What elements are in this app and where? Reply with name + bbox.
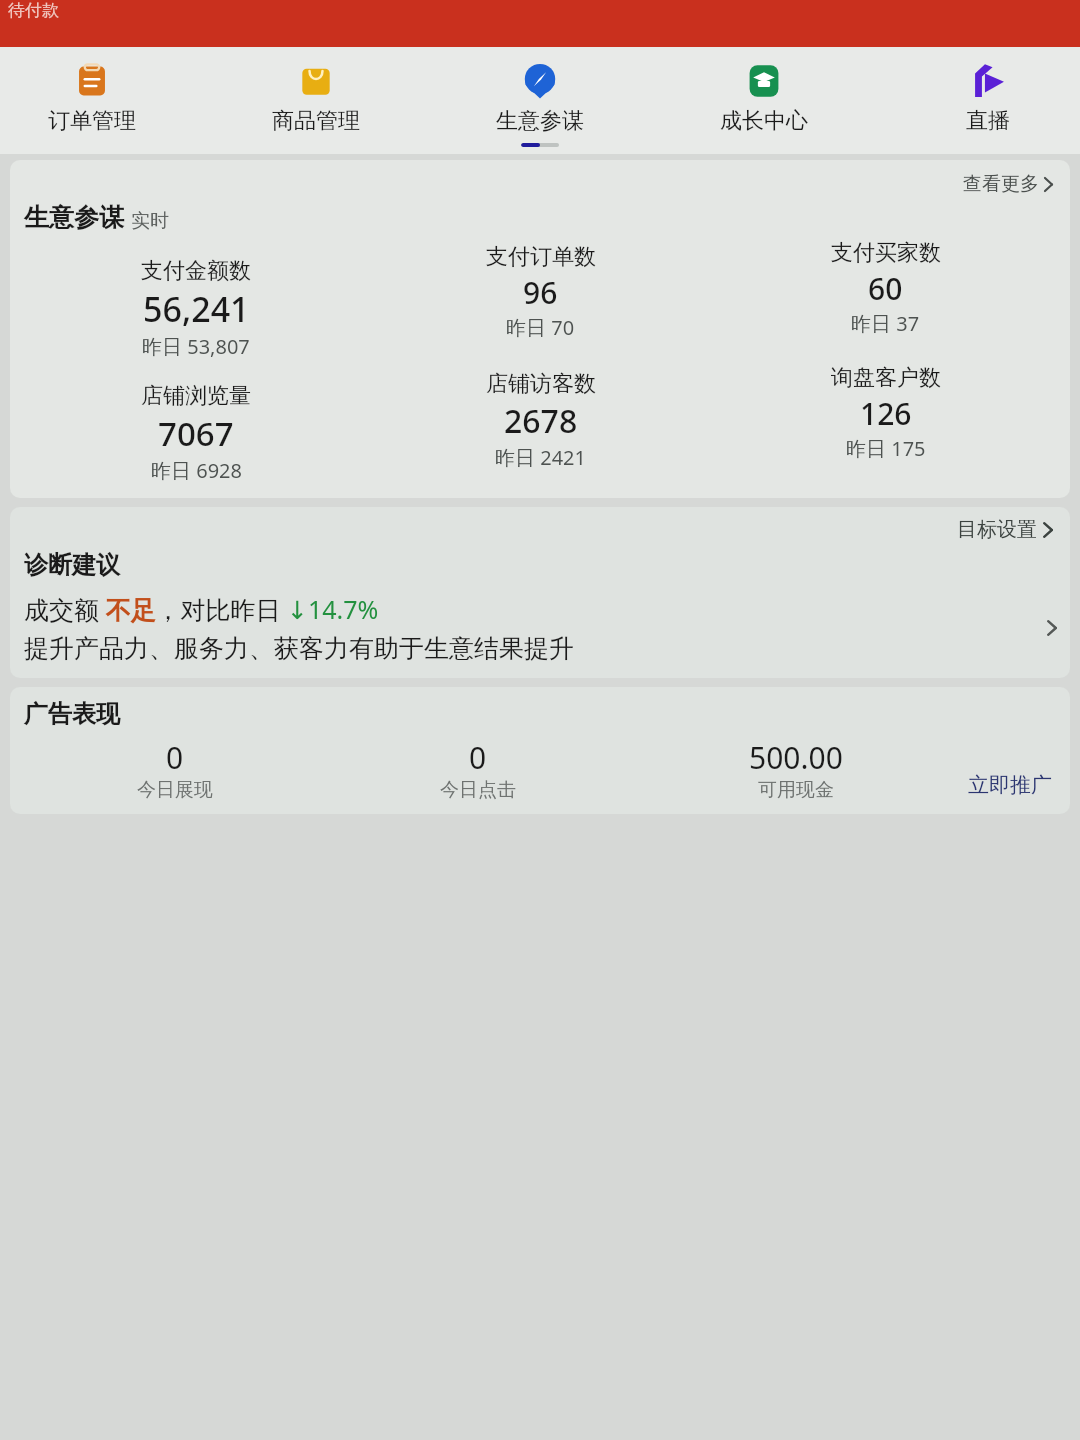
staticText: 昨日 175 xyxy=(846,435,926,462)
button[interactable]: 立即推广 xyxy=(962,768,1058,802)
staticText: 店铺访客数 xyxy=(486,370,596,398)
staticText: 昨日 70 xyxy=(506,314,575,341)
button[interactable]: 生意参谋 xyxy=(454,57,626,137)
staticText: 56,241 xyxy=(143,286,250,332)
staticText: 成长中心 xyxy=(720,107,808,135)
staticText: 支付订单数 xyxy=(486,243,596,271)
staticText: 待付款 xyxy=(8,0,59,21)
staticText: 商品管理 xyxy=(272,107,360,135)
button[interactable]: 目标设置 xyxy=(953,513,1058,546)
staticText: 昨日 37 xyxy=(851,310,920,337)
staticText: 查看更多 xyxy=(963,172,1039,196)
button[interactable]: 成长中心 xyxy=(678,57,850,137)
staticText: 7067 xyxy=(158,411,234,456)
staticText: 立即推广 xyxy=(968,772,1052,798)
button[interactable]: 商品管理 xyxy=(230,57,402,137)
button[interactable]: 直播 xyxy=(902,57,1074,137)
button[interactable]: 目标设置 xyxy=(10,507,1070,678)
staticText: 店铺浏览量 xyxy=(141,382,251,410)
staticText: 60 xyxy=(868,268,903,309)
staticText: 订单管理 xyxy=(48,107,136,135)
staticText: 今日点击 xyxy=(440,778,516,802)
button[interactable]: 店铺浏览量 xyxy=(24,364,368,486)
button[interactable]: 订单管理 xyxy=(6,57,178,137)
staticText: 询盘客户数 xyxy=(831,364,941,392)
button[interactable]: 支付金额数 xyxy=(24,239,368,362)
staticText: 支付金额数 xyxy=(141,257,251,285)
button[interactable]: 支付订单数 xyxy=(368,239,713,343)
button[interactable]: 询盘客户数 xyxy=(713,364,1058,464)
staticText: 生意参谋 xyxy=(24,202,124,233)
staticText: 2678 xyxy=(504,399,578,443)
staticText: 昨日 2421 xyxy=(495,444,586,471)
staticText: 0 xyxy=(166,737,184,778)
button[interactable]: 查看更多 xyxy=(959,168,1058,200)
button[interactable]: 店铺访客数 xyxy=(368,364,713,473)
button[interactable]: 支付买家数 xyxy=(713,239,1058,339)
staticText: 今日展现 xyxy=(137,778,213,802)
staticText: 生意参谋 xyxy=(496,107,584,135)
staticText: 昨日 6928 xyxy=(151,457,242,484)
staticText: 直播 xyxy=(966,107,1010,135)
staticText: 目标设置 xyxy=(957,517,1037,542)
staticText: 支付买家数 xyxy=(831,239,941,267)
staticText: 126 xyxy=(860,393,912,434)
staticText: 提升产品力、服务力、获客力有助于生意结果提升 xyxy=(24,633,574,664)
button[interactable]: 广告表现 xyxy=(10,687,1070,814)
staticText: 实时 xyxy=(131,209,169,233)
staticText: 96 xyxy=(523,272,558,313)
staticText: 500.00 xyxy=(749,737,843,778)
staticText: 诊断建议 xyxy=(24,550,120,580)
staticText: 成交额 不足，对比昨日 ↓14.7% xyxy=(24,592,379,626)
button[interactable]: 查看更多 xyxy=(10,160,1070,498)
staticText: 可用现金 xyxy=(758,778,834,802)
staticText: 昨日 53,807 xyxy=(142,333,250,360)
staticText: 广告表现 xyxy=(24,699,120,729)
staticText: 0 xyxy=(469,737,487,778)
